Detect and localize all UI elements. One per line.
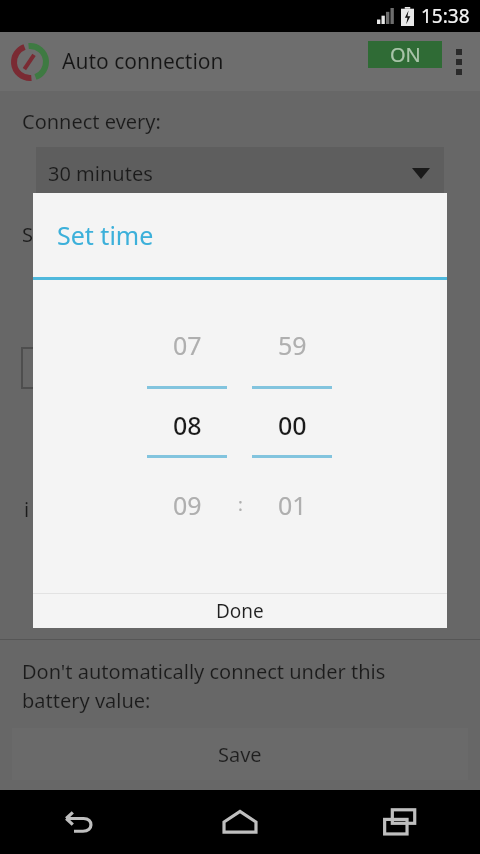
- button[interactable]: Home: [160, 790, 320, 854]
- staticText: Don't automatically connect under this: [22, 658, 386, 685]
- staticText: 07: [173, 328, 202, 360]
- button[interactable]: Save: [12, 728, 468, 780]
- button[interactable]: Done: [33, 594, 447, 628]
- staticText: 00: [278, 408, 307, 440]
- staticText: Set time: [57, 218, 154, 252]
- button[interactable]: 30 minutes: [36, 147, 444, 199]
- staticText: Done: [216, 598, 264, 624]
- button[interactable]: 09: [141, 488, 233, 520]
- staticText: Auto connection: [62, 47, 294, 76]
- staticText: battery value:: [22, 687, 151, 714]
- button[interactable]: 00: [246, 408, 338, 440]
- staticText: i: [24, 496, 30, 523]
- button[interactable]: 59: [246, 328, 338, 360]
- staticText: S: [22, 221, 33, 248]
- staticText: 15:38: [421, 3, 470, 29]
- staticText: :: [238, 492, 243, 517]
- staticText: Save: [218, 741, 262, 768]
- staticText: 59: [278, 328, 307, 360]
- button[interactable]: 07: [141, 328, 233, 360]
- button[interactable]: Back: [0, 790, 160, 854]
- staticText: 09: [173, 488, 202, 520]
- staticText: 30 minutes: [48, 160, 153, 187]
- button[interactable]: Auto connection toggle, ON: [294, 41, 442, 83]
- staticText: 01: [278, 488, 307, 520]
- staticText: Connect every:: [22, 108, 161, 135]
- staticText: ON: [390, 41, 421, 68]
- button[interactable]: 01: [246, 488, 338, 520]
- staticText: 08: [173, 408, 202, 440]
- button[interactable]: Recent apps: [320, 790, 480, 854]
- button[interactable]: 08: [141, 408, 233, 440]
- button[interactable]: More options: [442, 32, 476, 91]
